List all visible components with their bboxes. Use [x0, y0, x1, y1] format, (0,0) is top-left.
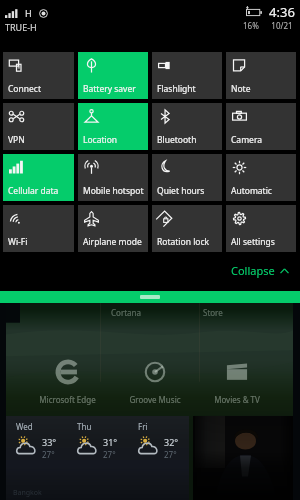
staticText: Flashlight — [157, 83, 196, 95]
staticText: 10/21 — [268, 20, 296, 31]
staticText: 4:36 — [268, 3, 296, 21]
staticText: Cortana — [111, 307, 142, 318]
button[interactable]: Microsoft Edge — [39, 358, 96, 405]
staticText: Bangkok — [13, 488, 42, 498]
staticText: Store — [203, 307, 223, 318]
button[interactable]: Bluetooth — [152, 103, 222, 150]
staticText: 27° — [42, 449, 55, 460]
button[interactable]: Automatic — [226, 154, 296, 201]
button[interactable]: Wi-Fi — [3, 205, 74, 252]
staticText: Connect — [8, 83, 41, 95]
staticText: Camera — [231, 134, 262, 146]
other: Note — [232, 58, 247, 73]
staticText: Wi-Fi — [8, 236, 28, 248]
staticText: Thu — [77, 421, 92, 432]
button[interactable]: Location — [78, 103, 148, 150]
staticText: 16% — [243, 20, 259, 31]
staticText: Note — [231, 83, 251, 95]
staticText: 31° — [103, 436, 118, 448]
other: Connect — [9, 58, 24, 73]
other: Battery saver — [84, 58, 99, 73]
other: VPN — [9, 109, 24, 124]
staticText: Location — [83, 134, 118, 146]
button[interactable]: Cellular data — [3, 154, 74, 201]
staticText: Automatic — [231, 185, 272, 197]
button[interactable]: Note — [226, 52, 296, 99]
other: Cellular data — [9, 160, 24, 175]
button[interactable]: Rotation lock — [152, 205, 222, 252]
button[interactable] — [193, 416, 293, 500]
button[interactable]: Collapse — [231, 263, 289, 278]
staticText: Battery saver — [83, 83, 136, 95]
staticText: All settings — [231, 236, 275, 248]
button[interactable]: Quiet hours — [152, 154, 222, 201]
button[interactable]: Wed — [6, 416, 189, 500]
button[interactable]: Camera — [226, 103, 296, 150]
staticText: 27° — [164, 449, 177, 460]
button[interactable]: Connect — [3, 52, 74, 99]
staticText: Groove Music — [129, 394, 181, 405]
staticText: VPN — [8, 134, 25, 146]
button[interactable]: Mobile hotspot — [78, 154, 148, 201]
button[interactable]: Flashlight — [152, 52, 222, 99]
staticText: Rotation lock — [157, 236, 210, 248]
other: Quiet hours — [158, 160, 173, 175]
other: Automatic — [232, 160, 247, 175]
staticText: 27° — [103, 449, 116, 460]
other: Camera — [232, 109, 247, 124]
button[interactable]: Battery saver — [78, 52, 148, 99]
other: Location — [84, 109, 99, 124]
staticText: Bluetooth — [157, 134, 197, 146]
button[interactable]: Airplane mode — [78, 205, 148, 252]
button[interactable]: Groove Music — [129, 358, 181, 405]
staticText: Airplane mode — [83, 236, 142, 248]
other: Bluetooth — [158, 109, 173, 124]
staticText: Microsoft Edge — [39, 394, 96, 405]
staticText: H — [25, 7, 32, 19]
staticText: Fri — [138, 421, 148, 432]
staticText: TRUE-H — [5, 21, 37, 33]
other: Wi-Fi — [9, 211, 24, 226]
staticText: Wed — [16, 421, 33, 432]
staticText: Collapse — [231, 263, 275, 278]
other: Rotation lock — [158, 211, 173, 226]
other: Airplane mode — [84, 211, 99, 226]
button[interactable]: Movies & TV — [214, 358, 260, 405]
button[interactable]: All settings — [226, 205, 296, 252]
other: Mobile hotspot — [84, 160, 99, 175]
other: All settings — [232, 211, 247, 226]
staticText: Quiet hours — [157, 185, 205, 197]
staticText: Mobile hotspot — [83, 185, 144, 197]
staticText: 33° — [42, 436, 57, 448]
staticText: Cellular data — [8, 185, 59, 197]
staticText: Movies & TV — [214, 394, 260, 405]
staticText: 32° — [164, 436, 179, 448]
other: Flashlight — [158, 58, 173, 73]
button[interactable]: VPN — [3, 103, 74, 150]
